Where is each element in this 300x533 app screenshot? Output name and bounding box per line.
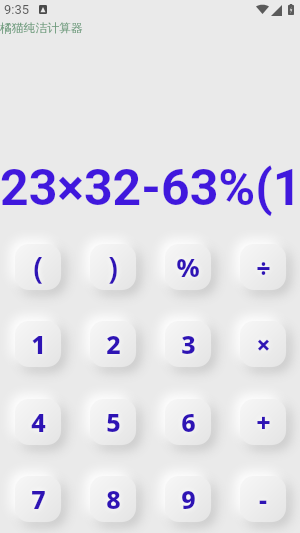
button[interactable]: ( <box>15 244 61 290</box>
button[interactable]: 8 <box>90 476 136 522</box>
staticText: 9:35 <box>4 2 30 17</box>
staticText: 4 <box>31 405 46 439</box>
button[interactable]: 6 <box>165 399 211 445</box>
staticText: 8 <box>106 482 121 516</box>
button[interactable]: 1 <box>15 321 61 367</box>
staticText: - <box>259 482 267 516</box>
button[interactable]: 4 <box>15 399 61 445</box>
staticText: × <box>256 327 271 361</box>
button[interactable]: ) <box>90 244 136 290</box>
staticText: ) <box>108 247 118 288</box>
other: Signal <box>271 5 282 16</box>
staticText: 5 <box>106 405 121 439</box>
staticText: % <box>176 250 200 284</box>
staticText: 橘猫纯洁计算器 <box>0 21 83 36</box>
button[interactable]: 2 <box>90 321 136 367</box>
staticText: 3 <box>181 327 196 361</box>
button[interactable]: 7 <box>15 476 61 522</box>
staticText: 7 <box>31 482 46 516</box>
staticText: 23×32-63%(1 <box>0 159 300 218</box>
button[interactable]: + <box>240 399 286 445</box>
button[interactable]: - <box>240 476 286 522</box>
other: Wi-Fi <box>256 4 269 14</box>
button[interactable]: 9 <box>165 476 211 522</box>
staticText: 1 <box>31 327 46 361</box>
staticText: 9 <box>181 482 196 516</box>
staticText: ( <box>33 247 43 288</box>
button[interactable]: × <box>240 321 286 367</box>
staticText: + <box>256 405 271 439</box>
staticText: ÷ <box>256 250 271 284</box>
button[interactable]: % <box>165 244 211 290</box>
button[interactable]: ÷ <box>240 244 286 290</box>
staticText: 2 <box>106 327 121 361</box>
staticText: 6 <box>181 405 196 439</box>
button[interactable]: 3 <box>165 321 211 367</box>
button[interactable]: 5 <box>90 399 136 445</box>
other: Battery <box>288 4 294 15</box>
